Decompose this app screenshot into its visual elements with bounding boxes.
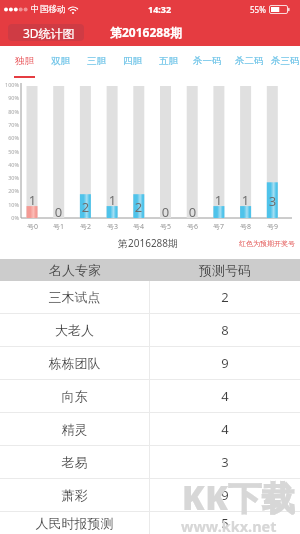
staticText: 9 bbox=[150, 486, 300, 504]
staticText: 3D统计图 bbox=[23, 25, 75, 41]
staticText: 萧彩 bbox=[0, 487, 149, 503]
staticText: 三木试点 bbox=[0, 289, 149, 305]
staticText: 0% bbox=[0, 214, 19, 221]
staticText: 四胆 bbox=[123, 55, 142, 67]
staticText: 4 bbox=[150, 420, 300, 438]
staticText: 80% bbox=[0, 108, 19, 115]
staticText: 10% bbox=[0, 201, 19, 208]
button[interactable]: 杀一码 bbox=[186, 46, 228, 78]
staticText: 70% bbox=[0, 121, 19, 128]
staticText: 中国移动 bbox=[31, 4, 66, 15]
button[interactable]: 三木试点 bbox=[0, 281, 300, 313]
staticText: 30% bbox=[0, 174, 19, 181]
staticText: 第2016288期 bbox=[110, 24, 183, 40]
staticText: 60% bbox=[0, 134, 19, 141]
staticText: 1 bbox=[207, 191, 230, 209]
button[interactable]: 栋栋团队 bbox=[0, 347, 300, 379]
staticText: 40% bbox=[0, 161, 19, 168]
staticText: 杀二码 bbox=[235, 55, 264, 67]
staticText: 2 bbox=[127, 198, 150, 216]
button[interactable]: 老易 bbox=[0, 446, 300, 478]
staticText: 五胆 bbox=[159, 55, 178, 67]
button[interactable]: 向东 bbox=[0, 380, 300, 412]
staticText: 号1 bbox=[46, 222, 71, 232]
staticText: 三胆 bbox=[87, 55, 106, 67]
staticText: 精灵 bbox=[0, 421, 149, 437]
staticText: 14:32 bbox=[148, 3, 172, 15]
staticText: 杀三码 bbox=[271, 55, 300, 67]
staticText: 0 bbox=[47, 203, 70, 221]
button[interactable]: 萧彩 bbox=[0, 479, 300, 511]
button[interactable]: 独胆 bbox=[6, 46, 42, 78]
staticText: 独胆 bbox=[15, 55, 34, 67]
staticText: 2 bbox=[150, 288, 300, 306]
staticText: 100% bbox=[0, 81, 19, 88]
staticText: www.kkx.net bbox=[181, 516, 277, 534]
staticText: 0 bbox=[154, 203, 177, 221]
staticText: 号6 bbox=[180, 222, 205, 232]
staticText: 3 bbox=[150, 453, 300, 471]
staticText: 0 bbox=[181, 203, 204, 221]
staticText: 号0 bbox=[20, 222, 45, 232]
staticText: 号7 bbox=[206, 222, 231, 232]
staticText: 2 bbox=[74, 198, 97, 216]
staticText: 向东 bbox=[0, 388, 149, 404]
button[interactable]: 三胆 bbox=[78, 46, 114, 78]
staticText: 1 bbox=[21, 191, 44, 209]
staticText: 栋栋团队 bbox=[0, 355, 149, 371]
staticText: 1 bbox=[101, 191, 124, 209]
button[interactable]: 人民时报预测 bbox=[0, 512, 300, 534]
staticText: 3 bbox=[261, 192, 284, 210]
staticText: 20% bbox=[0, 187, 19, 194]
button[interactable]: 杀三码 bbox=[270, 46, 300, 78]
button[interactable]: 大老人 bbox=[0, 314, 300, 346]
staticText: 双胆 bbox=[51, 55, 70, 67]
staticText: 人民时报预测 bbox=[0, 515, 149, 531]
staticText: 预测号码 bbox=[150, 262, 300, 278]
staticText: 号3 bbox=[100, 222, 125, 232]
staticText: 号2 bbox=[73, 222, 98, 232]
staticText: 大老人 bbox=[0, 322, 149, 338]
staticText: 老易 bbox=[0, 454, 149, 470]
staticText: 4 bbox=[150, 387, 300, 405]
staticText: 号9 bbox=[260, 222, 285, 232]
staticText: 号8 bbox=[233, 222, 258, 232]
staticText: 1 bbox=[234, 191, 257, 209]
staticText: 8 bbox=[150, 321, 300, 339]
staticText: 号4 bbox=[126, 222, 151, 232]
button[interactable]: 四胆 bbox=[114, 46, 150, 78]
staticText: 9 bbox=[150, 354, 300, 372]
staticText: 第2016288期 bbox=[118, 236, 179, 250]
staticText: KK下载 bbox=[182, 475, 296, 520]
staticText: 50% bbox=[0, 148, 19, 155]
staticText: 杀一码 bbox=[193, 55, 222, 67]
staticText: 90% bbox=[0, 94, 19, 101]
staticText: 号5 bbox=[153, 222, 178, 232]
staticText: 名人专家 bbox=[0, 262, 150, 278]
staticText: 红色为预期开奖号 bbox=[239, 239, 295, 248]
staticText: 5 bbox=[150, 514, 300, 532]
button[interactable]: 双胆 bbox=[42, 46, 78, 78]
button[interactable]: 五胆 bbox=[150, 46, 186, 78]
button[interactable]: 杀二码 bbox=[228, 46, 270, 78]
button[interactable]: 3D统计图 bbox=[8, 24, 84, 41]
staticText: 55% bbox=[250, 4, 266, 15]
button[interactable]: 精灵 bbox=[0, 413, 300, 445]
